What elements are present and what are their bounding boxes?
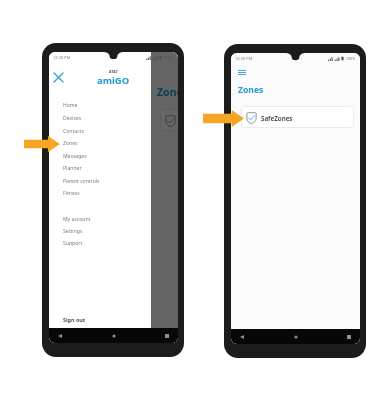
staticText: Sign out (63, 316, 86, 323)
staticText: Parent controls (63, 178, 100, 185)
button[interactable]: SafeZones (160, 109, 178, 131)
button[interactable]: Contacts (49, 125, 152, 137)
button[interactable]: Planner (49, 162, 152, 174)
button[interactable]: Open menu (238, 70, 246, 75)
button[interactable]: Parent controls (49, 175, 152, 187)
button[interactable]: Fitness (49, 187, 152, 199)
staticText: Settings (63, 228, 83, 235)
button[interactable]: Home (112, 334, 116, 338)
staticText: SafeZones (261, 114, 293, 122)
button[interactable]: Settings (49, 225, 152, 237)
button[interactable]: Back (58, 334, 62, 338)
button[interactable]: Zones (49, 137, 152, 149)
button[interactable]: Devices (49, 112, 152, 124)
button[interactable]: Back (240, 335, 244, 339)
staticText: Support (63, 240, 83, 247)
staticText: Contacts (63, 128, 84, 135)
staticText: 12:30 PM (53, 55, 71, 60)
button[interactable]: Home (294, 335, 298, 339)
button[interactable]: Support (49, 237, 152, 249)
button[interactable]: SafeZones (241, 106, 354, 128)
staticText: 100% (346, 56, 356, 61)
staticText: Devices (63, 115, 82, 122)
staticText: 12:30 PM (235, 56, 253, 61)
staticText: AT&T (109, 69, 118, 74)
button[interactable]: My account (49, 213, 152, 225)
staticText: Zones (157, 85, 178, 99)
button[interactable]: Messages (49, 150, 152, 162)
staticText: Zones (63, 140, 78, 147)
button[interactable]: Sign out (49, 313, 152, 326)
staticText: Zones (238, 84, 264, 96)
staticText: My account (63, 216, 91, 223)
staticText: amiGO (97, 74, 130, 87)
button[interactable]: Home (49, 99, 152, 111)
staticText: Fitness (63, 190, 80, 197)
button[interactable]: Close menu (52, 71, 64, 83)
staticText: Planner (63, 165, 82, 172)
staticText: 100% (164, 55, 174, 60)
staticText: Home (63, 102, 78, 109)
staticText: Messages (63, 153, 87, 160)
